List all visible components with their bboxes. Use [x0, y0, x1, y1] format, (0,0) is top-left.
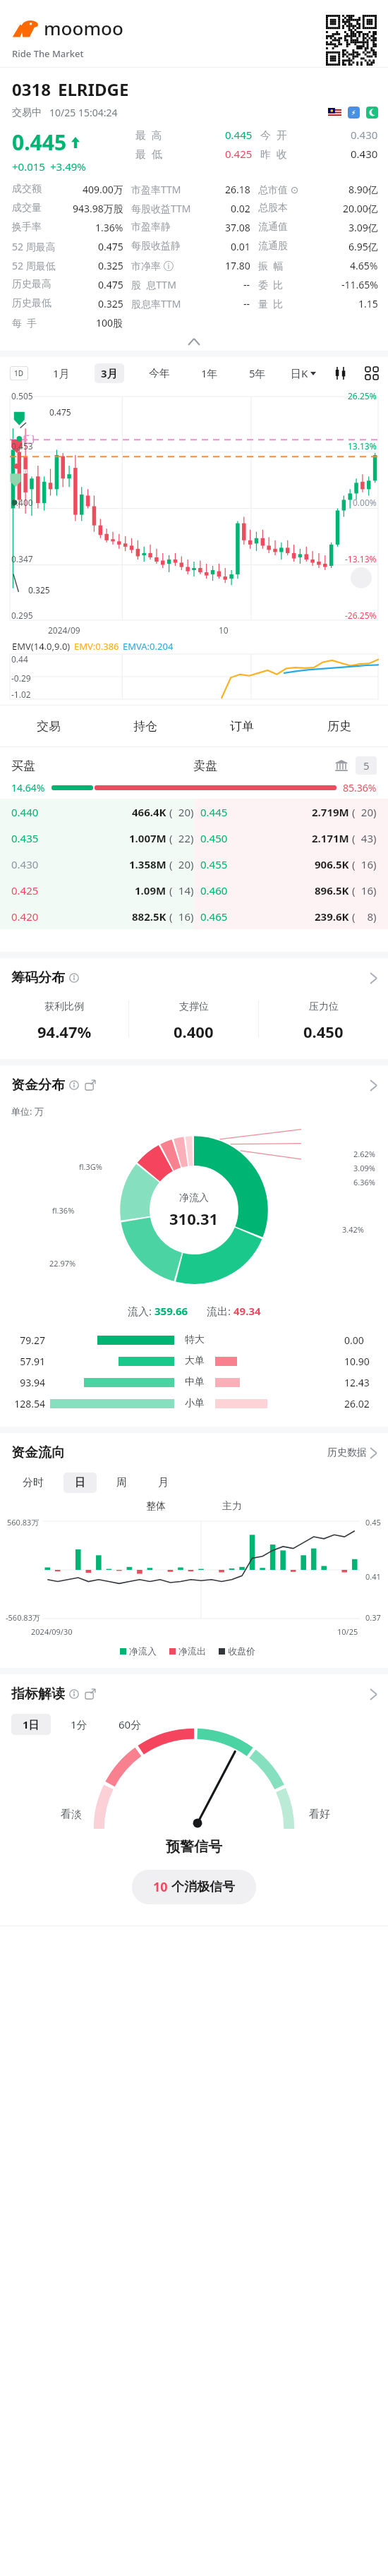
staticText: 日K — [291, 366, 308, 380]
button[interactable]: 5年 — [243, 363, 272, 383]
staticText: 0.445 — [225, 128, 253, 142]
staticText: 流通值 — [258, 221, 288, 234]
staticText: 310.31 — [169, 1208, 219, 1229]
button[interactable]: 日K — [291, 366, 316, 380]
staticText: 资金流向 — [11, 1444, 65, 1461]
staticText: 持仓 — [133, 719, 157, 734]
staticText: 卖盘 — [193, 758, 217, 773]
staticText: 882.5K — [132, 909, 166, 924]
button[interactable]: Collapse — [0, 332, 388, 351]
staticText: 0.450 — [303, 1021, 344, 1042]
staticText: 周 — [116, 1476, 127, 1489]
button[interactable]: 订单 — [193, 706, 291, 746]
staticText: 0.430 — [351, 128, 378, 142]
button[interactable]: 筹码分布 — [0, 958, 388, 998]
button[interactable]: 0.425 — [0, 877, 388, 903]
staticText: 历史最低 — [12, 297, 51, 310]
button[interactable]: 历史 — [291, 706, 388, 746]
button[interactable]: 分时 — [11, 1473, 55, 1493]
staticText: 获利比例 — [44, 1000, 84, 1013]
staticText: 收盘价 — [228, 1645, 255, 1657]
button[interactable]: Broker — [334, 758, 348, 773]
button[interactable]: 1分 — [59, 1714, 99, 1735]
staticText: 0.430 — [11, 857, 39, 871]
button[interactable]: 0.440 — [0, 799, 388, 825]
staticText: 最 低 — [135, 147, 162, 161]
staticText: 5 — [363, 758, 370, 773]
staticText: 0.347 — [11, 553, 33, 564]
staticText: 净流入 — [179, 1192, 209, 1204]
button[interactable]: 1月 — [47, 363, 76, 383]
button[interactable]: 60分 — [107, 1714, 153, 1735]
button[interactable]: 5 — [356, 756, 377, 775]
staticText: 3.09% — [353, 1163, 375, 1173]
button[interactable]: 0.430 — [0, 851, 388, 877]
button[interactable]: 1日 — [11, 1714, 51, 1735]
other: Lightning — [348, 107, 360, 119]
staticText: 20 — [356, 805, 373, 819]
staticText: 10/25 — [337, 1626, 358, 1637]
button[interactable]: 日 — [63, 1473, 97, 1493]
staticText: 49.34 — [234, 1304, 261, 1318]
staticText: 0.00 — [344, 1334, 377, 1347]
staticText: ) — [190, 883, 194, 897]
staticText: 净流出 — [178, 1645, 206, 1657]
button[interactable]: 10 — [132, 1870, 256, 1904]
staticText: ( — [352, 831, 356, 845]
staticText: 20.00亿 — [343, 202, 378, 215]
staticText: 79.27 — [11, 1334, 45, 1347]
staticText: 中单 — [181, 1376, 209, 1389]
button[interactable]: 今年 — [143, 364, 176, 383]
staticText: ) — [190, 857, 194, 871]
staticText: 5年 — [249, 366, 266, 380]
button[interactable]: 持仓 — [97, 706, 193, 746]
staticText: 买盘 — [11, 758, 35, 773]
staticText: 85.36% — [343, 781, 377, 794]
staticText: 26.25% — [348, 390, 377, 401]
staticText: 0.453 — [11, 440, 33, 452]
staticText: ) — [190, 831, 194, 845]
staticText: 0.400 — [11, 497, 33, 508]
button[interactable]: 交易 — [0, 706, 97, 746]
button[interactable]: 资金流向 — [0, 1433, 388, 1473]
staticText: 0.45 — [365, 1517, 381, 1528]
staticText: 52 周最高 — [12, 240, 56, 253]
staticText: 0.420 — [11, 909, 39, 924]
button[interactable]: 0.435 — [0, 825, 388, 851]
staticText: 100股 — [96, 316, 123, 329]
button[interactable]: 1年 — [195, 363, 224, 383]
button[interactable]: Grid view — [365, 367, 378, 380]
staticText: 14.64% — [11, 781, 45, 794]
staticText: 每股收益静 — [131, 240, 181, 253]
staticText: 0.445 — [200, 805, 228, 819]
staticText: 市净率 ⓘ — [131, 259, 174, 272]
button[interactable]: 3月 — [95, 363, 124, 383]
staticText: 1月 — [53, 366, 70, 380]
staticText: -26.25% — [345, 610, 377, 621]
button[interactable]: 指标解读 — [0, 1674, 388, 1714]
staticText: 37.08 — [225, 221, 250, 234]
button[interactable]: 周 — [105, 1473, 138, 1493]
staticText: 分时 — [23, 1476, 44, 1489]
staticText: 压力位 — [309, 1000, 339, 1013]
button[interactable]: Candles — [334, 367, 347, 380]
staticText: 0.01 — [231, 240, 250, 253]
staticText: 1日 — [23, 1717, 40, 1731]
staticText: 2.62% — [353, 1149, 375, 1159]
staticText: 2024/09 — [48, 624, 80, 636]
staticText: 52 周最低 — [12, 259, 56, 272]
staticText: 支撑位 — [179, 1000, 209, 1013]
button[interactable]: 0.420 — [0, 903, 388, 929]
staticText: 0.00% — [353, 497, 377, 508]
button[interactable]: 资金分布 — [0, 1065, 388, 1105]
button[interactable]: 月 — [147, 1473, 180, 1493]
staticText: 市盈率TTM — [131, 183, 181, 196]
staticText: 0318 — [12, 78, 51, 101]
staticText: 10 — [219, 624, 229, 636]
staticText: ( — [169, 831, 173, 845]
staticText: +3.49% — [50, 159, 86, 174]
button[interactable]: 1D — [10, 366, 28, 380]
staticText: 历史 — [327, 719, 351, 734]
staticText: 6.36% — [353, 1177, 375, 1187]
staticText: 总股本 — [258, 202, 288, 214]
